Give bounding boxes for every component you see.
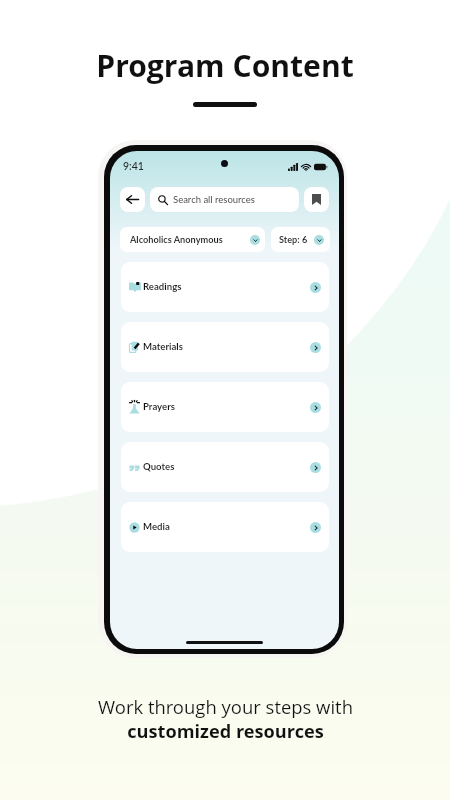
button[interactable]: Bookmarks xyxy=(304,187,329,212)
button[interactable]: Alcoholics Anonymous xyxy=(120,227,265,252)
staticText: Alcoholics Anonymous xyxy=(130,234,223,245)
staticText: 9:41 xyxy=(123,160,144,173)
button[interactable]: Readings xyxy=(121,262,329,312)
staticText: Quotes xyxy=(143,461,175,473)
button[interactable]: Back xyxy=(120,187,145,212)
button[interactable]: Search all resources xyxy=(150,187,299,212)
staticText: Search all resources xyxy=(173,194,255,205)
staticText: Media xyxy=(143,521,170,533)
button[interactable]: Prayers xyxy=(121,382,329,432)
button[interactable]: Step: 6 xyxy=(271,227,330,252)
button[interactable]: Materials xyxy=(121,322,329,372)
staticText: Step: 6 xyxy=(279,234,308,245)
staticText: Work through your steps with xyxy=(98,694,353,719)
staticText: Prayers xyxy=(143,401,175,413)
button[interactable]: Quotes xyxy=(121,442,329,492)
staticText: customized resources xyxy=(127,719,324,744)
staticText: Readings xyxy=(143,281,182,293)
button[interactable]: Media xyxy=(121,502,329,552)
staticText: Program Content xyxy=(96,45,354,86)
staticText: Materials xyxy=(143,341,183,353)
